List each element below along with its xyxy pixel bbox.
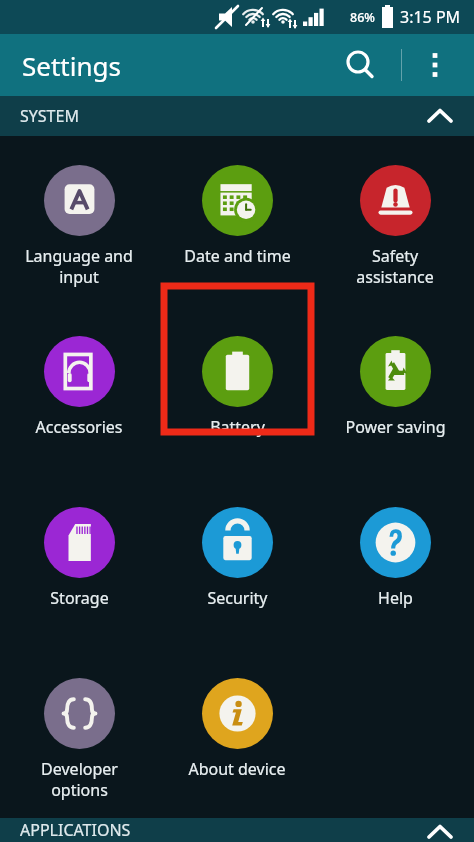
staticText: Language and input <box>25 245 133 288</box>
button[interactable]: Battery <box>158 307 316 478</box>
staticText: About device <box>188 758 286 780</box>
button[interactable]: Storage <box>0 478 158 649</box>
button[interactable]: Date and time <box>158 136 316 307</box>
button[interactable]: APPLICATIONS <box>0 818 474 842</box>
staticText: Battery <box>210 416 265 438</box>
button[interactable]: Developer options <box>0 649 158 818</box>
staticText: Help <box>378 587 413 609</box>
staticText: Accessories <box>35 416 123 438</box>
staticText: APPLICATIONS <box>20 819 131 841</box>
button[interactable]: Help <box>316 478 474 649</box>
staticText: Storage <box>50 587 109 609</box>
button[interactable]: More options <box>412 42 458 88</box>
button[interactable]: Accessories <box>0 307 158 478</box>
button[interactable]: About device <box>158 649 316 818</box>
button[interactable]: Power saving <box>316 307 474 478</box>
staticText: 3:15 PM <box>400 6 461 28</box>
button[interactable]: Security <box>158 478 316 649</box>
button[interactable]: Search <box>334 39 386 91</box>
button[interactable]: Safety assistance <box>316 136 474 307</box>
staticText: Date and time <box>184 245 291 267</box>
staticText: Power saving <box>345 416 446 438</box>
staticText: Developer options <box>41 758 118 801</box>
button[interactable]: Language and input <box>0 136 158 307</box>
staticText: SYSTEM <box>20 105 79 127</box>
staticText: Security <box>207 587 268 609</box>
staticText: Safety assistance <box>356 245 434 288</box>
staticText: Settings <box>22 48 121 83</box>
button[interactable]: SYSTEM <box>0 96 474 136</box>
staticText: 86% <box>350 9 375 26</box>
